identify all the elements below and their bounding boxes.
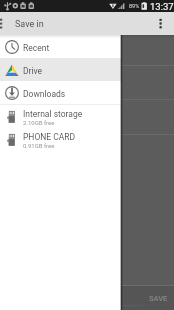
staticText: Save in: [15, 19, 44, 30]
staticText: 13:37: [150, 1, 174, 12]
staticText: 0.91GB free: [23, 142, 55, 149]
button[interactable]: Internal storage: [0, 105, 121, 128]
staticText: Internal storage: [23, 109, 83, 119]
button[interactable]: Open navigation drawer: [0, 14, 3, 30]
staticText: Recent: [23, 43, 50, 53]
staticText: PHONE CARD: [23, 132, 76, 142]
button[interactable]: Recent: [0, 35, 121, 58]
button[interactable]: PHONE CARD: [0, 128, 121, 151]
button[interactable]: More options: [154, 13, 168, 33]
staticText: Drive: [23, 66, 43, 76]
button[interactable]: Drive: [0, 58, 121, 81]
staticText: SAVE: [149, 294, 168, 303]
staticText: 2.10GB free: [23, 119, 55, 126]
staticText: Downloads: [23, 89, 66, 99]
button[interactable]: SAVE: [144, 291, 172, 306]
button[interactable]: Downloads: [0, 81, 121, 104]
staticText: 89%: [129, 3, 140, 9]
